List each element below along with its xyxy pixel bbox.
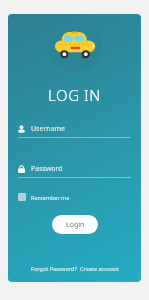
staticText: Forgot Password? <box>31 265 77 272</box>
staticText: Login <box>66 220 85 230</box>
button[interactable]: Create account <box>80 265 119 272</box>
staticText: Password <box>31 164 63 174</box>
button[interactable]: Remember me <box>18 190 131 204</box>
staticText: Create account <box>80 265 119 272</box>
staticText: LOG IN <box>48 85 101 105</box>
staticText: Username <box>31 124 66 134</box>
staticText: Remember me <box>31 194 70 201</box>
button[interactable]: Password <box>18 162 131 178</box>
button[interactable]: Login <box>52 215 98 234</box>
button[interactable]: Username <box>18 122 131 138</box>
button[interactable]: Forgot Password? <box>31 265 77 272</box>
